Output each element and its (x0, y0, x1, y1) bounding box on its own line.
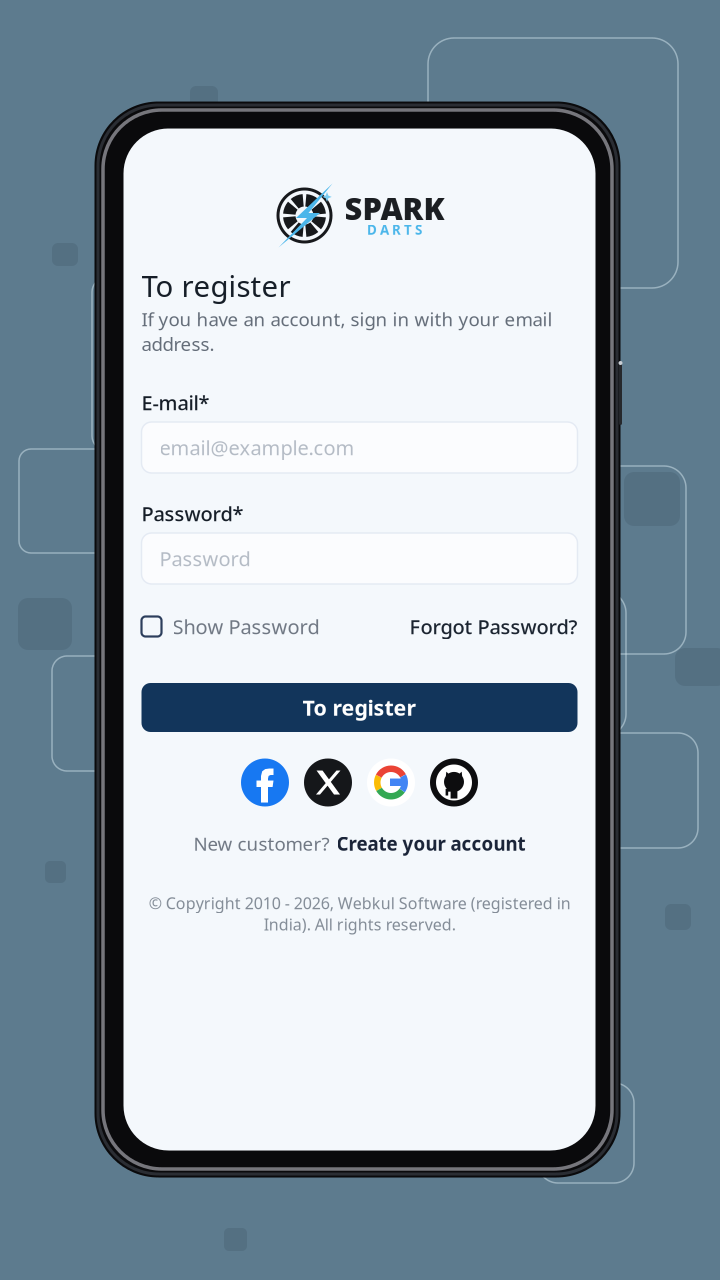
staticText: Create your account (336, 831, 525, 856)
staticText: © Copyright 2010 - 2026, Webkul Software… (148, 892, 570, 935)
staticText: Password (159, 545, 250, 572)
staticText: Forgot Password? (409, 613, 577, 640)
staticText: To register (302, 693, 416, 722)
staticText: New customer? (193, 831, 329, 856)
button[interactable]: Continue with X (304, 758, 352, 806)
staticText: E-mail* (141, 389, 209, 416)
staticText: SPARK (344, 188, 444, 228)
button[interactable]: New customer? (193, 829, 525, 857)
button[interactable]: Continue with GitHub (430, 758, 478, 806)
button[interactable]: Continue with Google (367, 758, 415, 806)
button[interactable]: Forgot Password? (409, 611, 577, 641)
staticText: If you have an account, sign in with you… (141, 306, 552, 356)
button[interactable]: Show Password (141, 611, 319, 641)
button[interactable]: To register (141, 683, 577, 732)
staticText: Password* (141, 500, 243, 527)
staticText: Show Password (172, 613, 319, 640)
button[interactable]: Continue with Facebook (241, 758, 289, 806)
staticText: To register (141, 266, 290, 305)
staticText: D A R T S (367, 221, 422, 238)
staticText: email@example.com (159, 434, 354, 461)
